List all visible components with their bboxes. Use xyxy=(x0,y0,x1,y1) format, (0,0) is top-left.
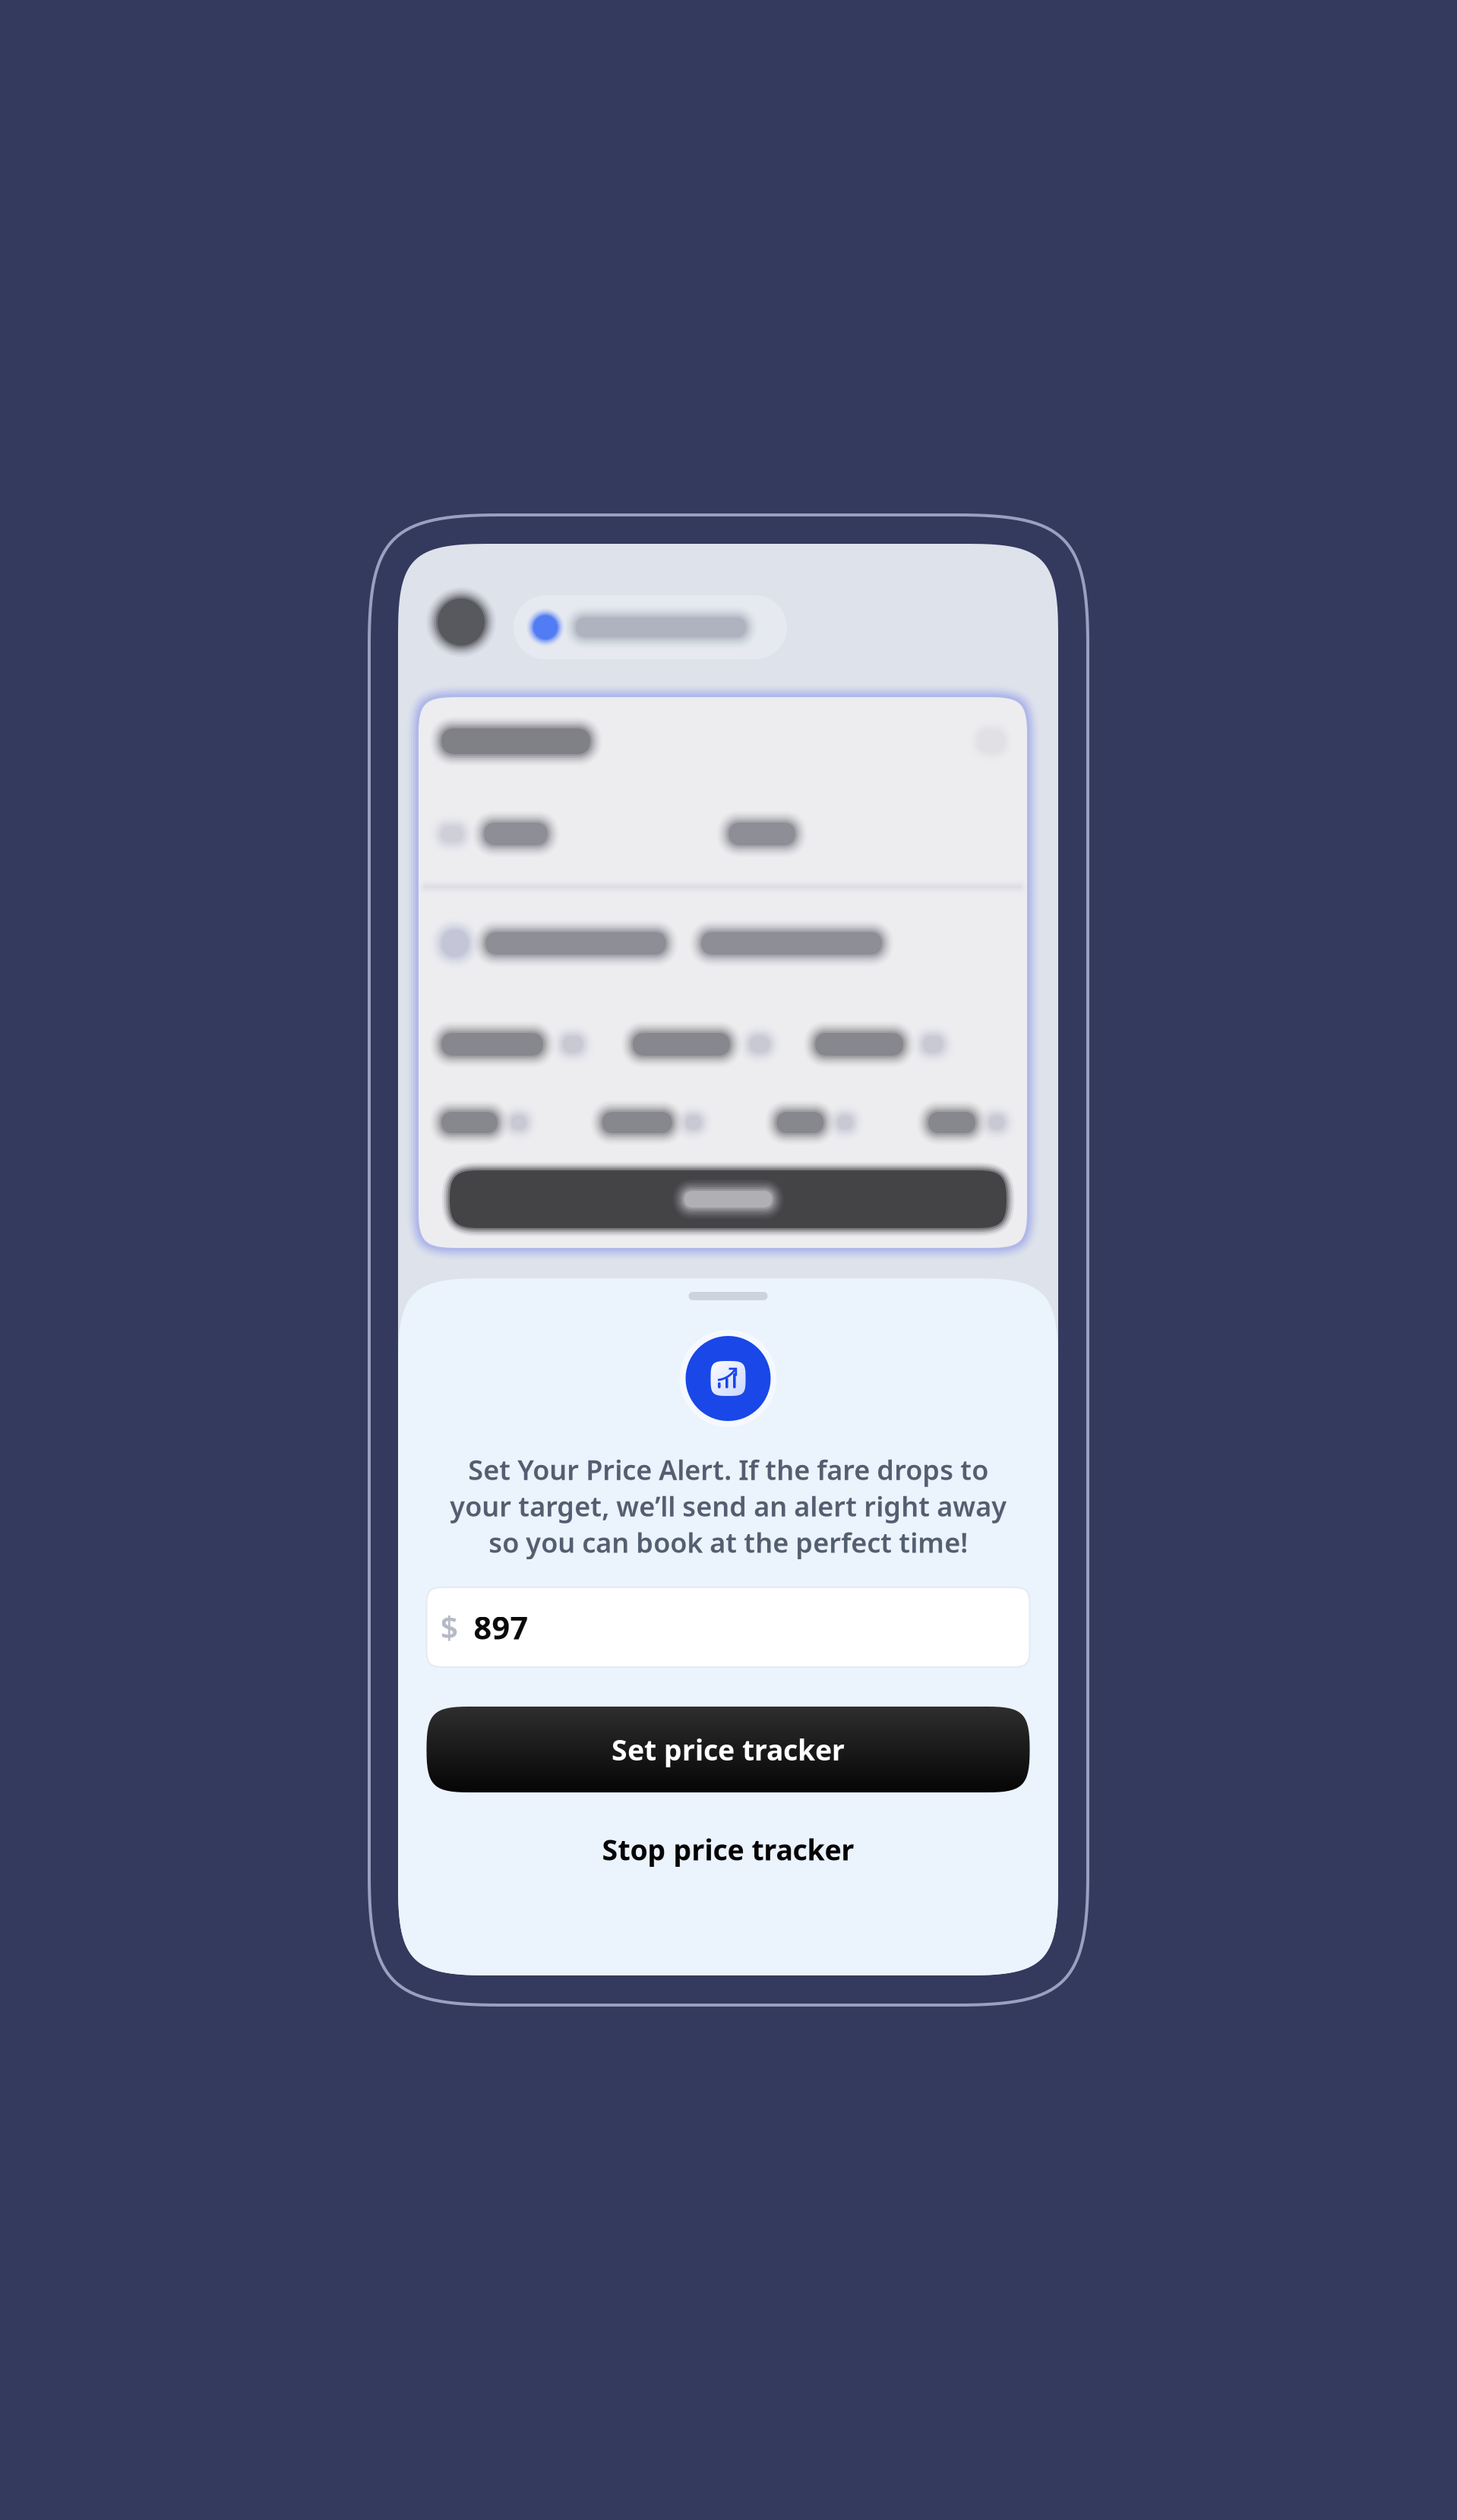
staticText: 897 xyxy=(474,1606,528,1648)
staticText: $ xyxy=(440,1606,458,1648)
button[interactable]: Search xyxy=(450,1170,1007,1228)
button[interactable]: $ xyxy=(427,1587,1030,1667)
button[interactable]: Stop price tracker xyxy=(531,1830,926,1869)
staticText: Stop price tracker xyxy=(602,1831,854,1868)
button[interactable]: Tracked prices xyxy=(514,595,787,659)
staticText: Set price tracker xyxy=(612,1731,845,1768)
button[interactable]: Profile xyxy=(438,598,485,646)
button[interactable]: Set price tracker xyxy=(427,1707,1030,1792)
staticText: Set Your Price Alert. If the fare drops … xyxy=(450,1451,1007,1560)
